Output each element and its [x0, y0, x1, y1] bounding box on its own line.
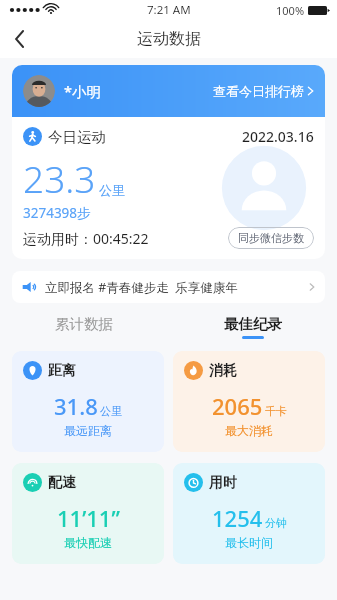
staticText: 2022.03.16	[242, 127, 314, 146]
staticText: 运动数据	[137, 29, 201, 49]
staticText: 31.8	[54, 391, 98, 421]
button[interactable]: 累计数据	[0, 315, 168, 341]
staticText: 千卡	[265, 404, 287, 418]
staticText: 用时	[209, 474, 237, 492]
button[interactable]: 距离	[12, 351, 164, 452]
staticText: 分钟	[265, 516, 287, 530]
staticText: 最远距离	[23, 423, 153, 438]
staticText: 7:21 AM	[147, 2, 191, 18]
staticText: 1254	[212, 503, 263, 533]
staticText: *小明	[64, 81, 101, 101]
staticText: 运动用时：00:45:22	[23, 229, 149, 248]
staticText: 累计数据	[55, 315, 113, 333]
staticText: 消耗	[209, 362, 237, 380]
staticText: 最大消耗	[184, 423, 314, 438]
staticText: 同步微信步数	[238, 231, 304, 245]
staticText: 23.3	[23, 153, 96, 203]
button[interactable]: Back	[0, 20, 40, 58]
staticText: 距离	[48, 362, 76, 380]
staticText: 最佳纪录	[224, 315, 282, 333]
button[interactable]: 配速	[12, 463, 164, 564]
staticText: 今日运动	[48, 128, 106, 146]
staticText: 最长时间	[184, 535, 314, 550]
button[interactable]: 消耗	[173, 351, 325, 452]
button[interactable]: 用时	[173, 463, 325, 564]
staticText: 公里	[100, 404, 122, 418]
staticText: 查看今日排行榜	[213, 83, 304, 99]
staticText: 配速	[48, 474, 76, 492]
staticText: 立即报名 #青春健步走 乐享健康年	[45, 279, 238, 296]
staticText: 100%	[276, 3, 305, 18]
button[interactable]: *小明	[12, 65, 325, 117]
button[interactable]: 立即报名 #青春健步走 乐享健康年	[12, 271, 325, 303]
staticText: 11’11”	[57, 503, 120, 533]
staticText: 3274398步	[23, 204, 91, 222]
button[interactable]: 同步微信步数	[228, 227, 314, 249]
staticText: 2065	[212, 391, 263, 421]
staticText: 公里	[99, 182, 125, 198]
button[interactable]: 最佳纪录	[168, 315, 337, 341]
staticText: 最快配速	[23, 535, 153, 550]
